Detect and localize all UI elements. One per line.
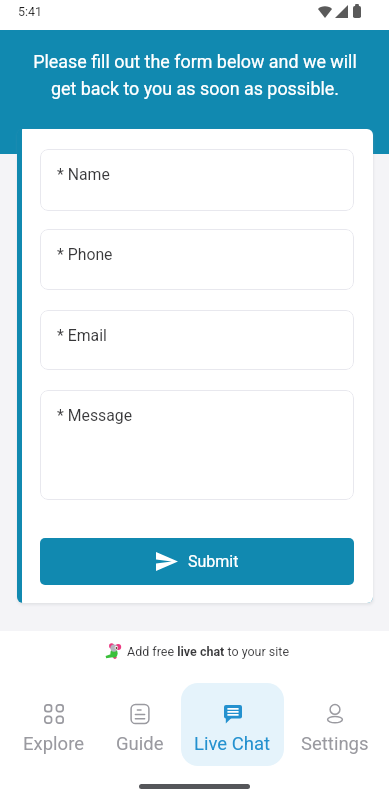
button[interactable]: Submit [40, 538, 354, 585]
staticText: Settings [301, 733, 369, 755]
button[interactable]: * Name [40, 149, 354, 211]
button[interactable]: * Phone [40, 229, 354, 290]
staticText: 5:41 [18, 4, 43, 19]
button[interactable]: * Email [40, 310, 354, 370]
button[interactable]: * Message [40, 390, 354, 500]
staticText: Explore [23, 733, 85, 755]
staticText: Guide [116, 733, 164, 755]
staticText: Add free live chat to your site [127, 644, 290, 659]
button[interactable]: Live Chat [181, 683, 284, 766]
button[interactable]: Guide [99, 683, 181, 766]
staticText: * Phone [57, 245, 113, 264]
staticText: Please fill out the form below and we wi… [33, 51, 357, 100]
staticText: * Email [57, 326, 107, 345]
staticText: Submit [188, 552, 239, 571]
staticText: * Name [57, 165, 110, 184]
staticText: * Message [57, 406, 133, 425]
button[interactable]: Settings [287, 683, 383, 766]
button[interactable]: Explore [8, 683, 100, 766]
staticText: Live Chat [194, 733, 271, 755]
